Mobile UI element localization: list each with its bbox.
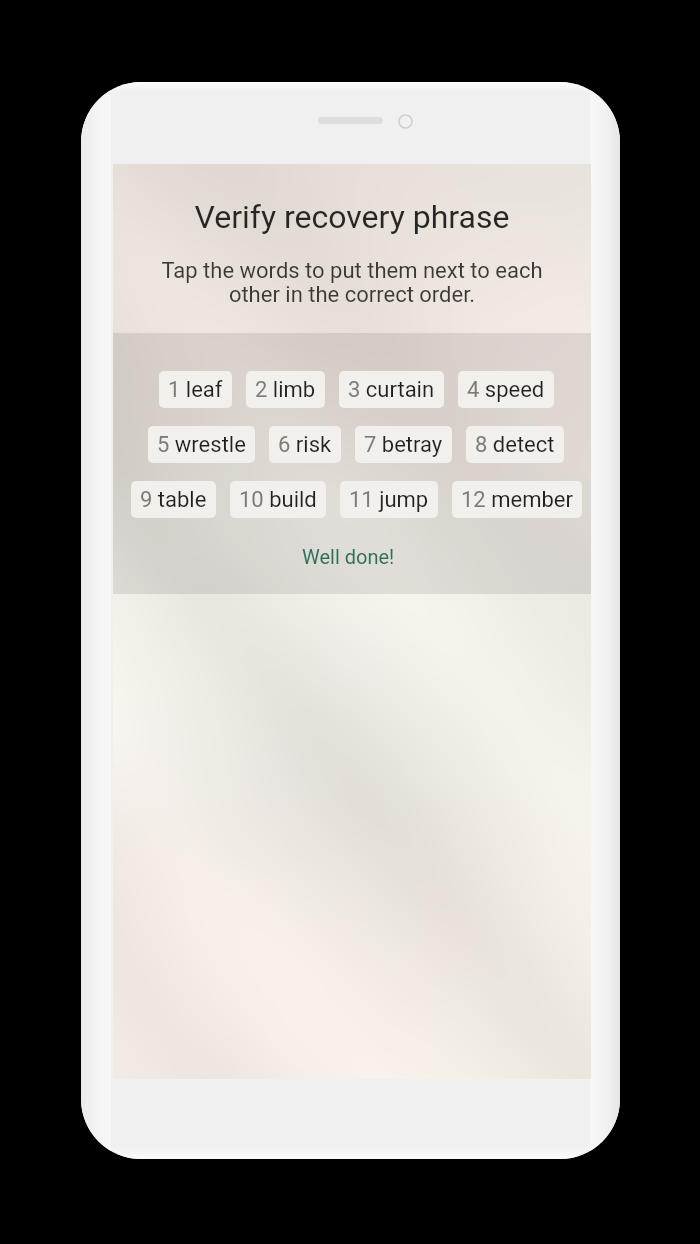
staticText: 2 limb	[255, 377, 316, 403]
button[interactable]: 11 jump	[340, 481, 438, 518]
staticText: 8 detect	[475, 432, 555, 458]
staticText: 3 curtain	[348, 377, 435, 403]
staticText: 1 leaf	[168, 377, 223, 403]
button[interactable]: 12 member	[452, 481, 582, 518]
button[interactable]: 6 risk	[269, 426, 341, 463]
staticText: 11 jump	[349, 487, 429, 513]
staticText: 12 member	[461, 487, 573, 513]
button[interactable]: 1 leaf	[159, 371, 232, 408]
button[interactable]: 8 detect	[466, 426, 564, 463]
staticText: Tap the words to put them next to each o…	[113, 258, 591, 307]
staticText: Well done!	[302, 545, 395, 568]
staticText: 9 table	[140, 487, 207, 513]
button[interactable]: 7 betray	[355, 426, 452, 463]
button[interactable]: 2 limb	[246, 371, 325, 408]
button[interactable]: 9 table	[131, 481, 216, 518]
button[interactable]: 4 speed	[458, 371, 554, 408]
staticText: Verify recovery phrase	[113, 198, 591, 236]
button[interactable]: 10 build	[230, 481, 326, 518]
button[interactable]: 5 wrestle	[148, 426, 255, 463]
staticText: 6 risk	[278, 432, 332, 458]
staticText: 10 build	[239, 487, 317, 513]
staticText: 7 betray	[364, 432, 443, 458]
staticText: 5 wrestle	[157, 432, 246, 458]
button[interactable]: 3 curtain	[339, 371, 444, 408]
staticText: 4 speed	[467, 377, 545, 403]
